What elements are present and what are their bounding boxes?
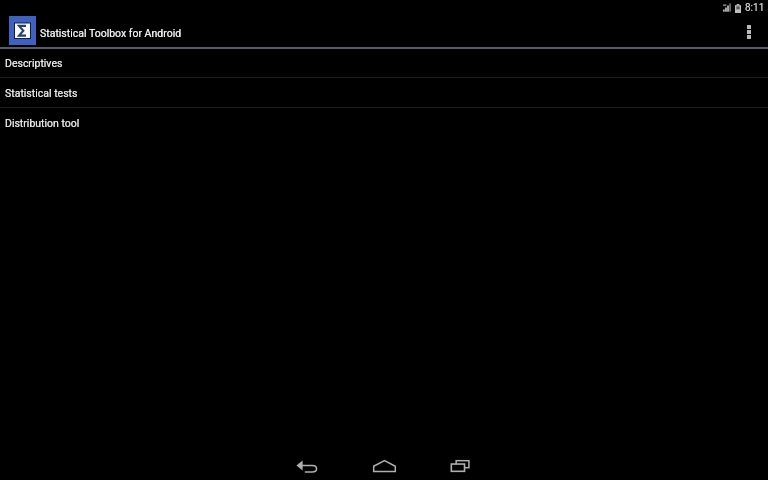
button[interactable]: Descriptives xyxy=(0,49,768,77)
staticText: 8:11 xyxy=(745,2,765,14)
button[interactable]: Back xyxy=(286,445,328,480)
button[interactable]: Distribution tool xyxy=(0,108,768,137)
staticText: Descriptives xyxy=(5,57,63,69)
staticText: Statistical Toolbox for Android xyxy=(40,27,182,39)
button[interactable]: Statistical tests xyxy=(0,78,768,107)
staticText: Distribution tool xyxy=(5,117,80,129)
staticText: Statistical tests xyxy=(5,87,78,99)
button[interactable]: Recent apps xyxy=(440,445,482,480)
button[interactable]: More options xyxy=(730,16,768,47)
button[interactable]: Home xyxy=(363,445,405,480)
